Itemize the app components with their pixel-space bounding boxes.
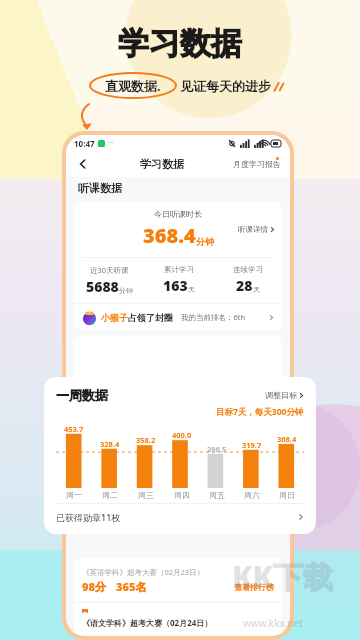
staticText: 328.4	[100, 439, 120, 449]
button[interactable]: 查看排行榜	[234, 582, 274, 592]
staticText: 周六	[244, 490, 260, 500]
staticText: 286.5	[207, 444, 227, 454]
staticText: 学习数据	[140, 157, 184, 171]
staticText: 周二	[102, 490, 118, 500]
staticText: 小猴子	[101, 312, 128, 323]
staticText: 累计学习	[164, 265, 194, 274]
staticText: 163	[163, 276, 188, 295]
button[interactable]: 返回	[75, 156, 91, 172]
staticText: KK下载	[232, 556, 334, 597]
staticText: 319.7	[242, 440, 262, 450]
staticText: 查看排行榜	[234, 582, 274, 592]
staticText: 目标7天，每天300分钟	[216, 406, 304, 418]
staticText: 调整目标	[265, 390, 297, 400]
button[interactable]: 已获得勋章11枚	[56, 504, 304, 530]
staticText: 《语文学科》超考大赛（02月24日）	[82, 617, 213, 628]
staticText: 一周数据	[56, 387, 108, 403]
staticText: 400.0	[172, 430, 192, 440]
button[interactable]: 小猴子	[82, 304, 274, 330]
staticText: 我的当前排名：6th	[181, 312, 246, 322]
staticText: 见证每天的进步	[180, 78, 271, 94]
staticText: 358.2	[136, 435, 156, 445]
staticText: 月度学习报告	[233, 159, 281, 169]
staticText: 周日	[279, 490, 295, 500]
staticText: 今日听课时长	[154, 209, 202, 219]
staticText: 已获得勋章11枚	[56, 511, 121, 523]
staticText: www.kkx.net	[243, 616, 303, 630]
staticText: 听课数据	[78, 181, 122, 195]
button[interactable]: 听课详情	[238, 225, 275, 234]
staticText: 《英语学科》超考大赛（02月23日）	[82, 567, 205, 577]
staticText: 直观数据.	[105, 77, 161, 95]
staticText: 10:47	[74, 138, 95, 149]
staticText: ···	[108, 138, 114, 148]
staticText: 连续学习	[233, 265, 263, 274]
staticText: 周四	[174, 490, 190, 500]
staticText: 天	[253, 285, 260, 294]
staticText: 学习数据	[118, 24, 242, 63]
staticText: 周一	[66, 490, 82, 500]
staticText: 近30天听课	[90, 265, 129, 275]
staticText: 周三	[138, 490, 154, 500]
staticText: 分钟	[119, 286, 133, 295]
staticText: 5688	[86, 277, 119, 296]
staticText: 28	[236, 276, 253, 295]
staticText: 453.7	[64, 424, 84, 434]
staticText: 天	[188, 285, 195, 294]
staticText: 368.4	[277, 434, 297, 444]
staticText: 听课详情	[238, 225, 268, 234]
staticText: 365名	[116, 579, 147, 594]
button[interactable]: 调整目标	[265, 390, 304, 400]
staticText: 368.4	[143, 222, 196, 249]
staticText: 占领了封圈	[128, 312, 173, 323]
button[interactable]: 月度学习报告	[233, 159, 281, 169]
staticText: 分钟	[196, 236, 214, 247]
staticText: 98分	[82, 579, 106, 594]
staticText: 周五	[209, 490, 225, 500]
